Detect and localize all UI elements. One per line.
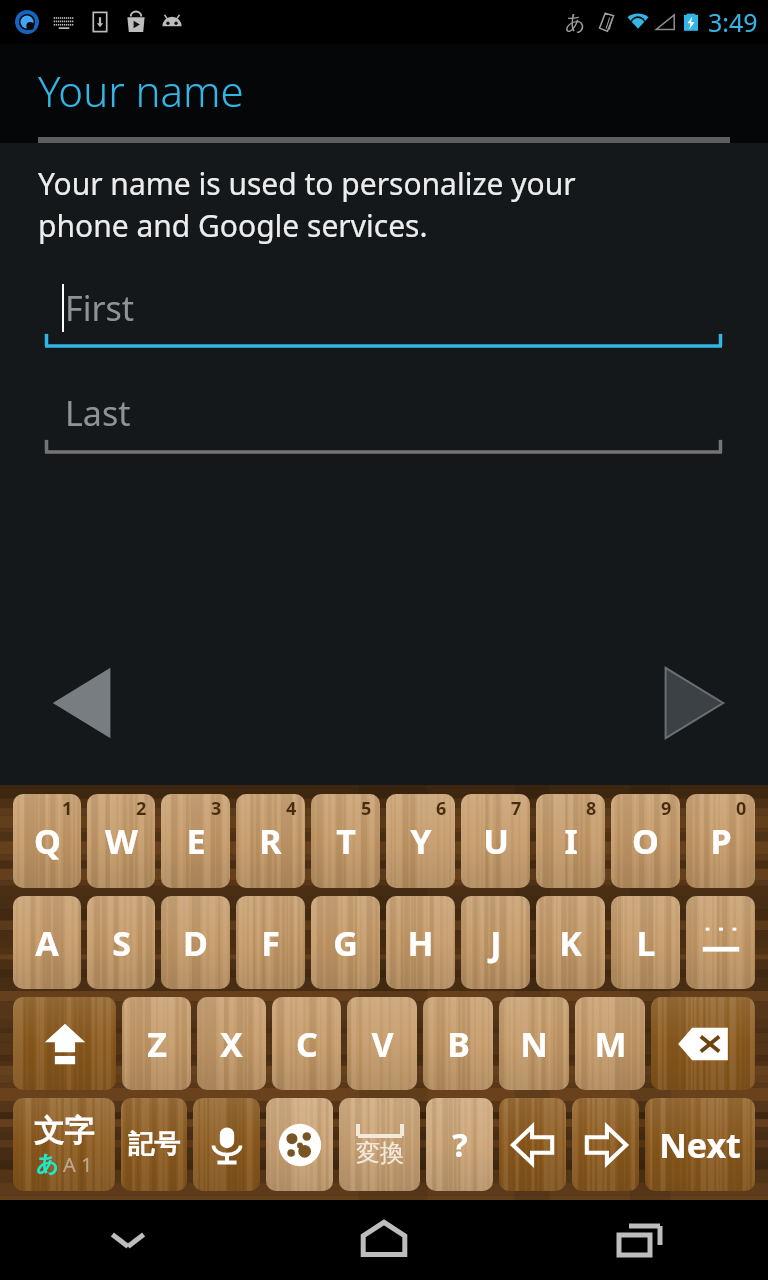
staticText: A xyxy=(35,920,59,966)
button[interactable]: Next xyxy=(645,1098,755,1191)
staticText: あ xyxy=(36,1150,59,1178)
button[interactable]: B xyxy=(423,997,493,1090)
staticText: 2 xyxy=(136,796,147,821)
button[interactable]: J xyxy=(461,896,530,989)
button[interactable]: First xyxy=(45,284,722,354)
staticText: Your name xyxy=(38,62,244,119)
staticText: N xyxy=(520,1021,548,1067)
button[interactable]: V xyxy=(347,997,417,1090)
staticText: U xyxy=(483,818,509,864)
button[interactable]: Previous xyxy=(48,663,128,743)
button[interactable]: Change language xyxy=(266,1098,333,1191)
staticText: 8 xyxy=(586,796,597,821)
staticText: J xyxy=(490,920,502,966)
staticText: 7 xyxy=(511,796,522,821)
button[interactable]: Next xyxy=(648,663,728,743)
staticText: 文字 xyxy=(34,1112,94,1150)
button[interactable]: 6 xyxy=(386,794,455,888)
staticText: D xyxy=(183,920,208,966)
button[interactable]: Symbols xyxy=(686,896,755,989)
button[interactable]: G xyxy=(311,896,380,989)
button[interactable]: ? xyxy=(426,1098,493,1191)
staticText: T xyxy=(336,818,356,864)
button[interactable]: Recent apps xyxy=(512,1200,768,1280)
button[interactable]: Home xyxy=(256,1200,512,1280)
staticText: R xyxy=(259,818,282,864)
staticText: Q xyxy=(34,818,61,864)
button[interactable]: 記号 xyxy=(121,1098,187,1191)
staticText: I xyxy=(564,818,578,864)
staticText: V xyxy=(371,1021,394,1067)
staticText: Y xyxy=(410,818,432,864)
button[interactable]: 2 xyxy=(87,794,155,888)
staticText: 1 xyxy=(62,796,73,821)
button[interactable]: 3 xyxy=(161,794,230,888)
button[interactable]: M xyxy=(575,997,645,1090)
button[interactable]: 5 xyxy=(311,794,380,888)
staticText: E xyxy=(186,818,206,864)
staticText: あ xyxy=(565,10,586,35)
staticText: B xyxy=(447,1021,470,1067)
button[interactable]: N xyxy=(499,997,569,1090)
button[interactable]: L xyxy=(611,896,680,989)
staticText: W xyxy=(105,818,138,864)
staticText: F xyxy=(261,920,280,966)
staticText: 変換 xyxy=(356,1138,404,1168)
staticText: H xyxy=(407,920,434,966)
button[interactable]: 変換 xyxy=(339,1098,420,1191)
staticText: 5 xyxy=(361,796,372,821)
staticText: O xyxy=(632,818,659,864)
button[interactable]: C xyxy=(272,997,341,1090)
staticText: C xyxy=(296,1021,318,1067)
staticText: 6 xyxy=(436,796,447,821)
button[interactable]: 9 xyxy=(611,794,680,888)
button[interactable]: 4 xyxy=(236,794,305,888)
button[interactable]: Hide keyboard xyxy=(0,1200,256,1280)
staticText: L xyxy=(636,920,656,966)
staticText: 4 xyxy=(286,796,297,821)
button[interactable]: Backspace xyxy=(651,997,755,1090)
button[interactable]: 1 xyxy=(13,794,81,888)
button[interactable]: Move cursor right xyxy=(572,1098,639,1191)
button[interactable]: F xyxy=(236,896,305,989)
button[interactable]: X xyxy=(197,997,266,1090)
button[interactable]: Move cursor left xyxy=(499,1098,566,1191)
button[interactable]: Shift xyxy=(13,997,116,1090)
staticText: Last xyxy=(65,390,131,436)
staticText: 0 xyxy=(736,796,747,821)
button[interactable]: A xyxy=(13,896,81,989)
staticText: Z xyxy=(147,1021,167,1067)
staticText: G xyxy=(333,920,358,966)
button[interactable]: 8 xyxy=(536,794,605,888)
button[interactable]: 0 xyxy=(686,794,755,888)
staticText: 記号 xyxy=(128,1128,180,1161)
button[interactable]: 文字 xyxy=(13,1098,115,1191)
staticText: K xyxy=(559,920,582,966)
staticText: S xyxy=(112,920,131,966)
staticText: 3 xyxy=(211,796,222,821)
button[interactable]: K xyxy=(536,896,605,989)
staticText: A 1 xyxy=(63,1151,93,1178)
button[interactable]: S xyxy=(87,896,155,989)
staticText: Your name is used to personalize your ph… xyxy=(38,163,576,246)
button[interactable]: Last xyxy=(45,390,722,460)
staticText: Next xyxy=(659,1122,741,1168)
button[interactable]: H xyxy=(386,896,455,989)
staticText: X xyxy=(220,1021,243,1067)
staticText: 3:49 xyxy=(708,5,758,39)
button[interactable]: Voice input xyxy=(193,1098,260,1191)
staticText: 9 xyxy=(661,796,672,821)
staticText: M xyxy=(594,1021,627,1067)
staticText: First xyxy=(65,285,135,331)
button[interactable]: D xyxy=(161,896,230,989)
staticText: ? xyxy=(452,1123,468,1167)
button[interactable]: 7 xyxy=(461,794,530,888)
staticText: P xyxy=(710,818,732,864)
button[interactable]: Z xyxy=(122,997,191,1090)
